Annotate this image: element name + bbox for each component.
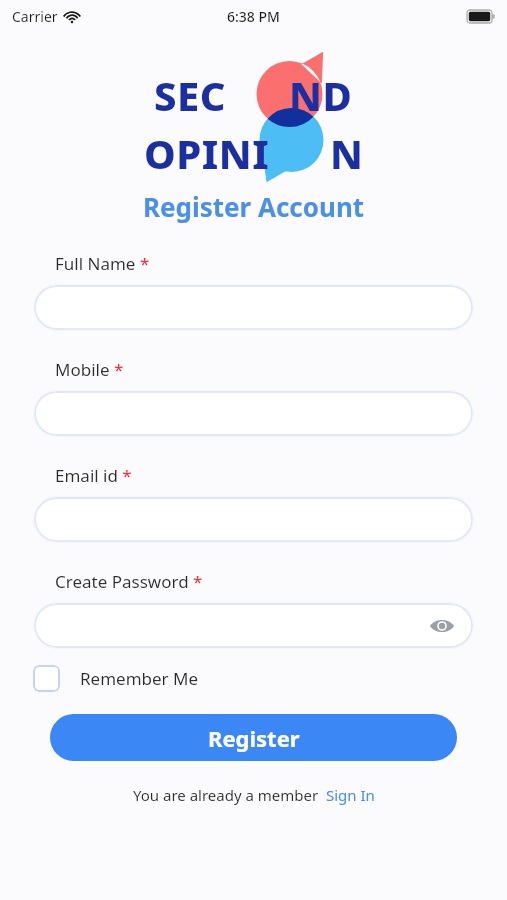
staticText: Remember Me	[80, 667, 199, 690]
staticText: Register Account	[0, 189, 507, 224]
button[interactable]	[34, 497, 473, 542]
button[interactable]: Show password	[427, 611, 457, 641]
staticText: N	[330, 126, 364, 178]
button[interactable]: Show password	[34, 603, 473, 648]
staticText: Carrier	[12, 7, 58, 26]
staticText: Register	[208, 723, 300, 753]
staticText: Create Password *	[55, 570, 203, 593]
staticText: Sign In	[326, 785, 375, 805]
button[interactable]: Sign In	[326, 785, 375, 805]
staticText: Mobile *	[55, 358, 124, 381]
staticText: OPINI	[144, 126, 270, 178]
button[interactable]: Remember Me	[33, 665, 199, 692]
staticText: 6:38 PM	[227, 7, 280, 26]
button[interactable]	[34, 285, 473, 330]
button[interactable]: Register	[50, 714, 457, 761]
staticText: You are already a member	[133, 785, 319, 805]
staticText: Email id *	[55, 464, 132, 487]
staticText: ND	[289, 68, 353, 122]
button[interactable]	[34, 391, 473, 436]
staticText: Full Name *	[55, 252, 150, 275]
staticText: SEC	[154, 68, 227, 122]
